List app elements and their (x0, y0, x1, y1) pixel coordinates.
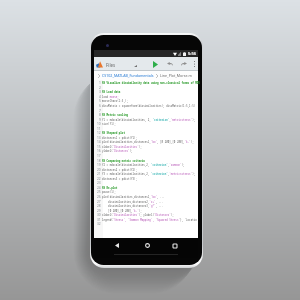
staticText: morseChars(1:5,); (102, 99, 128, 102)
staticText: xlabel('Dissimilarities'); ylabel('Dista… (102, 213, 174, 216)
staticText: 17 (97, 154, 101, 158)
staticText: 11 (97, 127, 101, 131)
staticText: 32 (97, 222, 101, 226)
staticText: plot(dissimilarities,distances1,'bo', ..… (102, 195, 165, 198)
staticText: 29 (97, 209, 101, 213)
staticText: 18 (97, 159, 101, 163)
staticText: %% Load data (102, 90, 121, 93)
staticText: distances2 = pdist(Y2); (102, 168, 138, 171)
staticText: 16 (97, 149, 101, 153)
staticText: 3 (99, 90, 101, 94)
staticText: dissimilarities,distances2,'r+', ... (102, 200, 164, 203)
staticText: %% Visualize dissimilarity data using no… (102, 81, 200, 84)
staticText: Y3 = mdscale(dissimilarities,2, 'criteri… (102, 172, 196, 175)
button[interactable]: More options (191, 57, 198, 71)
staticText: CS102_MATLAB_Fundamentals (102, 73, 154, 78)
staticText: distances3 = pdist(Y3); (102, 177, 138, 180)
staticText: 22 (97, 177, 101, 181)
staticText: dissMatrix = squareform(dissimilarities)… (102, 104, 196, 107)
staticText: 6 (99, 104, 101, 108)
staticText: plot(dissimilarities,distances1,'bo', [0… (102, 140, 194, 143)
staticText: [0 200],[0 200],'k-'); (102, 209, 142, 212)
staticText: Y2 = mdscale(dissimilarities,2, 'criteri… (102, 163, 185, 166)
staticText: 19 (97, 163, 101, 167)
button[interactable]: MATLAB (94, 57, 198, 71)
staticText: 27 (97, 200, 101, 204)
staticText: Files (106, 62, 116, 68)
staticText: 31 (97, 218, 101, 222)
staticText: 5:56 (188, 51, 196, 56)
staticText: distances1 = pdist(Y1); (102, 136, 138, 139)
staticText: 28 (97, 204, 101, 208)
staticText: size(Y1); (102, 122, 116, 125)
button[interactable]: CS102_MATLAB_Fundamentals (94, 71, 198, 80)
staticText: 25 (97, 190, 101, 194)
staticText: 10 (97, 122, 101, 126)
button[interactable]: Run (148, 57, 162, 71)
staticText: ylabel('Distances'); (102, 149, 133, 152)
staticText: %% Re-plot (102, 186, 118, 189)
staticText: 15 (97, 145, 101, 149)
staticText: 30 (97, 213, 101, 217)
staticText: Y1 = mdscale(dissimilarities, 2, 'criter… (102, 118, 196, 121)
button[interactable]: Home (140, 239, 154, 252)
staticText: load morse; (102, 95, 119, 98)
button[interactable]: Back (110, 239, 124, 252)
staticText: xlabel('Dissimilarities'); (102, 145, 142, 148)
staticText: %% Metric scaling (102, 113, 128, 116)
button[interactable]: Redo (177, 57, 190, 71)
staticText: 26 (97, 195, 101, 199)
staticText: 1 (99, 81, 101, 85)
staticText: dissimilarities,distances3,'g*', ... (102, 204, 164, 207)
staticText: legend('Stress', 'Sammon Mapping', 'Squa… (102, 218, 197, 221)
staticText: %% Shepard plot (102, 131, 125, 134)
staticText: 13 (97, 136, 101, 140)
staticText: 21 (97, 172, 101, 176)
staticText: %% Comparing metric criteria (102, 159, 145, 162)
staticText: 9 (99, 118, 101, 122)
staticText: 23 (97, 181, 101, 185)
staticText: Line_Plot_Morse.m (160, 73, 192, 78)
staticText: 20 (97, 168, 101, 172)
staticText: 14 (97, 140, 101, 144)
staticText: 8 (99, 113, 101, 117)
staticText: 4 (99, 95, 101, 99)
staticText: 24 (97, 186, 101, 190)
button[interactable]: MATLAB (96, 61, 103, 68)
staticText: 2 (99, 86, 101, 90)
staticText: 5 (99, 99, 101, 103)
button[interactable]: Undo (163, 57, 176, 71)
staticText: pause(1); (102, 190, 116, 193)
button[interactable]: Recents (168, 239, 182, 252)
staticText: 12 (97, 131, 101, 135)
staticText: 7 (99, 109, 101, 113)
